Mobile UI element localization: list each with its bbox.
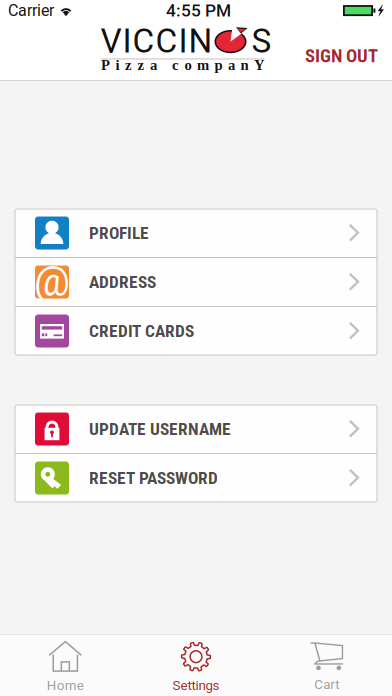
button[interactable]: RESET PASSWORD	[15, 454, 377, 502]
staticText: Carrier	[8, 1, 54, 20]
button[interactable]: Settings	[131, 635, 261, 696]
button[interactable]: UPDATE USERNAME	[15, 405, 377, 454]
staticText: UPDATE USERNAME	[89, 419, 231, 439]
staticText: @	[34, 259, 70, 305]
button[interactable]: Cart	[261, 635, 392, 696]
staticText: 4:55 PM	[166, 0, 231, 21]
staticText: ADDRESS	[89, 272, 156, 292]
button[interactable]: SIGN OUT	[293, 35, 390, 77]
staticText: Cart	[314, 677, 339, 692]
staticText: S	[251, 21, 271, 61]
staticText: SIGN OUT	[305, 45, 378, 67]
staticText: Settings	[172, 678, 219, 693]
button[interactable]: Home	[0, 635, 131, 696]
staticText: PROFILE	[89, 223, 149, 243]
staticText: CREDIT CARDS	[89, 321, 194, 341]
button[interactable]: @	[15, 258, 377, 307]
button[interactable]: CREDIT CARDS	[15, 307, 377, 355]
button[interactable]: PROFILE	[15, 209, 377, 258]
staticText: VICCIN	[100, 21, 212, 61]
staticText: RESET PASSWORD	[89, 468, 218, 488]
staticText: Pizza companY	[101, 57, 265, 73]
staticText: Home	[47, 678, 84, 693]
